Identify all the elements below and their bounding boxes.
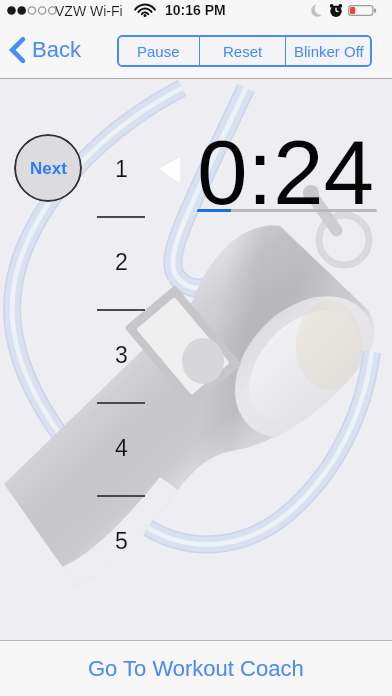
staticText: Pause	[137, 43, 180, 60]
button[interactable]: 5	[96, 518, 146, 564]
button[interactable]: Reset	[200, 35, 285, 67]
button[interactable]: Back	[0, 20, 91, 79]
button[interactable]: Pause	[117, 35, 199, 67]
staticText: 0:24	[197, 122, 375, 224]
staticText: VZW Wi-Fi	[55, 3, 123, 19]
button[interactable]: 4	[96, 425, 146, 471]
button[interactable]: 2	[96, 239, 146, 285]
staticText: Go To Workout Coach	[88, 656, 304, 681]
staticText: Back	[32, 37, 81, 62]
button[interactable]: Blinker Off	[286, 35, 371, 67]
other: Back	[10, 37, 25, 63]
staticText: Reset	[223, 43, 263, 60]
button[interactable]: Go To Workout Coach	[0, 641, 392, 696]
staticText: 4	[115, 435, 128, 461]
button[interactable]: Next	[14, 134, 82, 202]
button[interactable]: 1	[96, 146, 146, 192]
staticText: 3	[115, 342, 128, 368]
staticText: 5	[115, 528, 128, 554]
staticText: Blinker Off	[294, 43, 364, 60]
staticText: 1	[115, 156, 128, 182]
button[interactable]: 3	[96, 332, 146, 378]
staticText: 2	[115, 249, 128, 275]
staticText: Next	[30, 159, 67, 178]
staticText: 10:16 PM	[165, 2, 226, 18]
